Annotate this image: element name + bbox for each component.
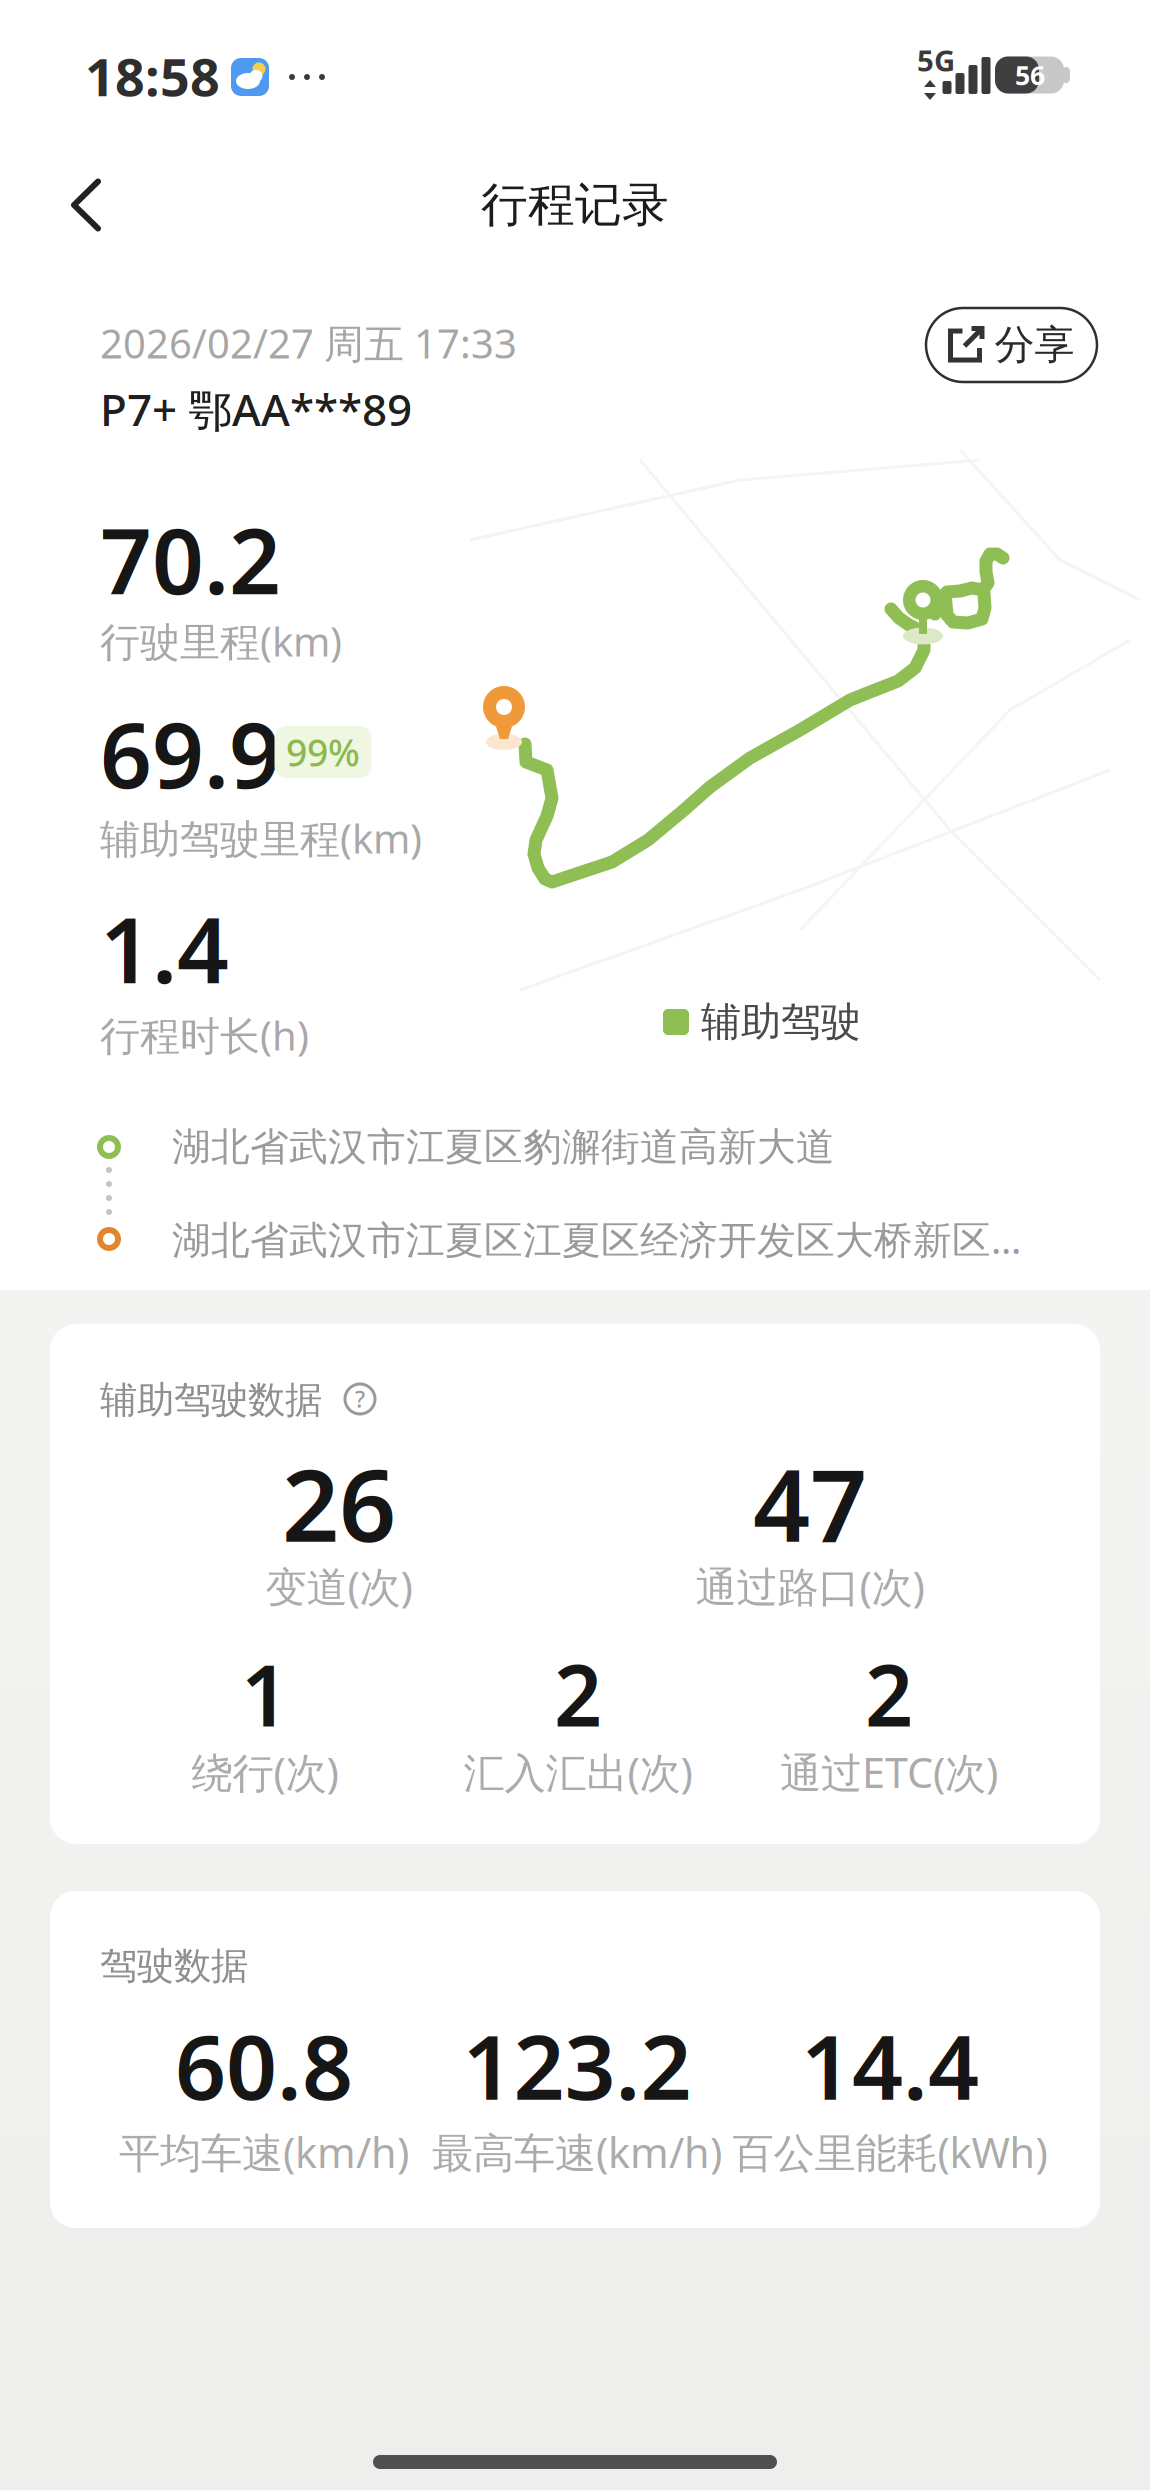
staticText: 湖北省武汉市江夏区豹澥街道高新大道 [172, 1123, 835, 1171]
staticText: 平均车速(km/h) [119, 2125, 409, 2179]
staticText: 2026/02/27 周五 17:33 [100, 316, 517, 369]
staticText: 26 [282, 1437, 396, 1569]
staticText: 123.2 [462, 2006, 691, 2124]
staticText: 18:58 [85, 41, 220, 111]
staticText: 绕行(次) [191, 1745, 338, 1799]
staticText: P7+ 鄂AA***89 [100, 380, 412, 438]
staticText: 47 [753, 1437, 867, 1569]
staticText: 70.2 [100, 499, 281, 619]
staticText: 行程时长(h) [100, 1008, 309, 1061]
staticText: 变道(次) [265, 1559, 412, 1613]
staticText: 汇入汇出(次) [463, 1745, 692, 1799]
staticText: 通过路口(次) [695, 1559, 924, 1613]
button[interactable]: 辅助驾驶数据说明 [345, 1384, 375, 1414]
staticText: 99% [286, 727, 360, 777]
staticText: 2 [865, 1638, 913, 1750]
staticText: 14.4 [801, 2006, 979, 2124]
staticText: 2 [554, 1638, 602, 1750]
staticText: 最高车速(km/h) [432, 2125, 722, 2179]
staticText: 驾驶数据 [100, 1943, 248, 1989]
staticText: 分享 [994, 320, 1074, 369]
button[interactable]: Back [74, 181, 98, 228]
staticText: 69.9 [100, 693, 281, 813]
staticText: 辅助驾驶数据 [100, 1377, 322, 1423]
staticText: 通过ETC(次) [780, 1745, 998, 1799]
staticText: 60.8 [175, 2006, 353, 2124]
staticText: 辅助驾驶里程(km) [100, 811, 422, 864]
staticText: 1 [241, 1638, 289, 1750]
staticText: 百公里能耗(kWh) [732, 2125, 1047, 2179]
staticText: 行驶里程(km) [100, 614, 342, 667]
staticText: 湖北省武汉市江夏区江夏区经济开发区大桥新区... [172, 1213, 1021, 1265]
button[interactable]: 分享 [926, 308, 1097, 382]
staticText: 辅助驾驶 [701, 997, 861, 1046]
staticText: ? [355, 1384, 365, 1414]
staticText: 1.4 [100, 888, 229, 1008]
staticText: 56 [1015, 57, 1045, 93]
staticText: 行程记录 [481, 176, 669, 234]
staticText: 5G [917, 40, 955, 79]
